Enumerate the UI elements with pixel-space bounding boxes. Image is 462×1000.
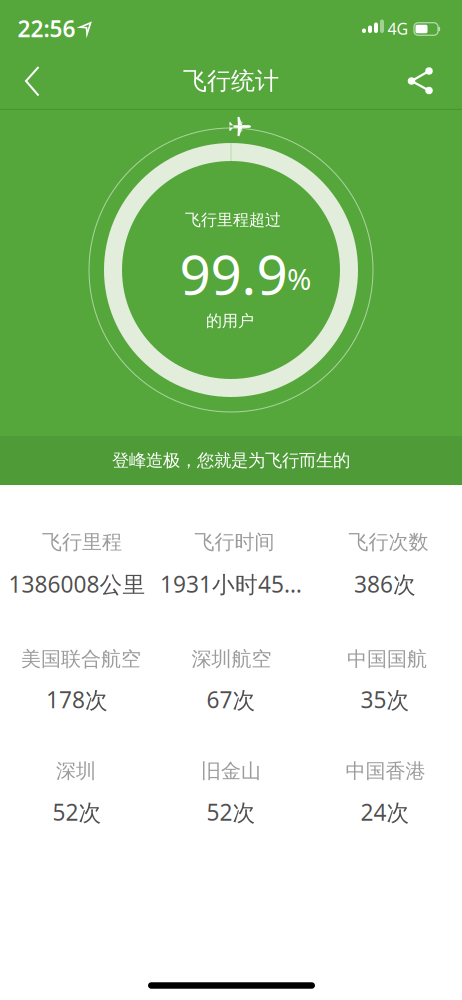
staticText: 4G — [387, 18, 408, 39]
staticText: 52次 — [206, 797, 255, 827]
staticText: 178次 — [46, 684, 108, 714]
staticText: 深圳航空 — [191, 647, 271, 671]
staticText: 飞行次数 — [348, 530, 428, 554]
staticText: 99.9 — [179, 237, 287, 310]
staticText: 中国香港 — [345, 759, 425, 783]
staticText: 1386008公里 — [8, 569, 145, 599]
staticText: 中国国航 — [347, 647, 427, 671]
staticText: 飞行时间 — [194, 530, 274, 554]
staticText: 1931小时45… — [160, 569, 302, 599]
staticText: 24次 — [360, 797, 409, 827]
staticText: 386次 — [354, 569, 416, 599]
staticText: 美国联合航空 — [21, 647, 141, 671]
staticText: 旧金山 — [201, 759, 261, 783]
staticText: 飞行里程 — [42, 530, 122, 554]
staticText: 的用户 — [206, 311, 254, 331]
button[interactable] — [400, 59, 444, 103]
staticText: 22:56 — [17, 13, 75, 43]
staticText: 深圳 — [56, 759, 96, 783]
button[interactable] — [10, 59, 54, 103]
staticText: % — [287, 259, 311, 298]
staticText: 35次 — [360, 684, 409, 714]
staticText: 飞行里程超过 — [185, 210, 281, 230]
staticText: 52次 — [52, 797, 101, 827]
staticText: 登峰造极，您就是为飞行而生的 — [112, 450, 350, 471]
staticText: 飞行统计 — [183, 66, 279, 96]
staticText: 67次 — [206, 684, 255, 714]
